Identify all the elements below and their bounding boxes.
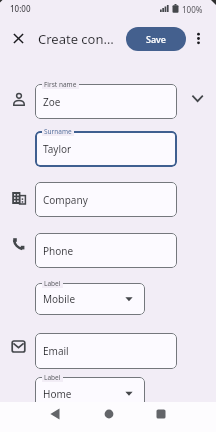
staticText: Create con… [38,30,114,48]
button[interactable]: Company [35,182,177,217]
button[interactable]: Mobile [35,283,145,315]
staticText: Taylor [43,142,72,156]
staticText: Save [146,33,167,45]
staticText: Mobile [43,292,76,306]
button[interactable]: Email [35,333,177,369]
staticText: First name [44,80,77,89]
staticText: Phone [43,244,74,258]
button[interactable]: Zoe [35,84,177,119]
button[interactable]: Taylor [35,131,177,167]
button[interactable] [44,403,66,425]
staticText: Company [43,193,88,207]
staticText: Surname [44,127,72,136]
staticText: Home [43,387,72,401]
button[interactable]: Home [35,377,145,410]
button[interactable] [150,403,172,425]
button[interactable] [190,28,207,49]
staticText: Label [44,279,61,288]
staticText: Zoe [43,95,61,109]
staticText: 100% [182,4,203,15]
button[interactable]: Phone [35,233,177,268]
button[interactable] [8,28,29,49]
button[interactable]: Save [126,27,186,51]
staticText: Email [43,344,69,358]
staticText: Label [44,373,61,382]
staticText: 10:00 [10,3,31,14]
button[interactable] [98,403,120,425]
